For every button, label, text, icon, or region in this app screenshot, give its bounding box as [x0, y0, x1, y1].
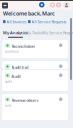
button[interactable]: My Service Requests	[42, 30, 73, 35]
button[interactable]: All Invoices	[3, 19, 27, 24]
button[interactable]: My Analytics	[3, 30, 28, 38]
staticText: summary	[5, 71, 15, 74]
button[interactable]: Audit	[2, 70, 68, 91]
staticText: Reconciliation	[11, 43, 34, 49]
staticText: All Invoices	[7, 19, 27, 24]
staticText: My Tasks	[25, 30, 42, 35]
staticText: Audit trail	[11, 64, 28, 70]
staticText: Welcome back, Marc	[3, 10, 55, 17]
button[interactable]: Apps	[39, 2, 44, 7]
staticText: My Service Requests	[42, 30, 73, 35]
staticText: audit	[5, 80, 12, 83]
button[interactable]: Revenue observ	[2, 94, 68, 120]
staticText: note	[5, 104, 12, 107]
button[interactable]: Reconciliation	[2, 40, 68, 58]
button[interactable]: All Service Requests	[28, 19, 67, 24]
button[interactable]: Account	[63, 1, 70, 8]
button[interactable]: Audit trail	[2, 61, 68, 69]
button[interactable]: My Tasks	[25, 30, 42, 35]
button[interactable]: Home	[2, 2, 8, 8]
staticText: Revenue observ	[11, 97, 38, 103]
staticText: All Service Requests	[32, 19, 67, 24]
button[interactable]: Search	[50, 2, 55, 7]
staticText: Audit	[11, 73, 20, 79]
staticText: My Analytics	[3, 30, 28, 35]
staticText: condition	[5, 50, 19, 53]
button[interactable]: Settings	[56, 2, 61, 7]
